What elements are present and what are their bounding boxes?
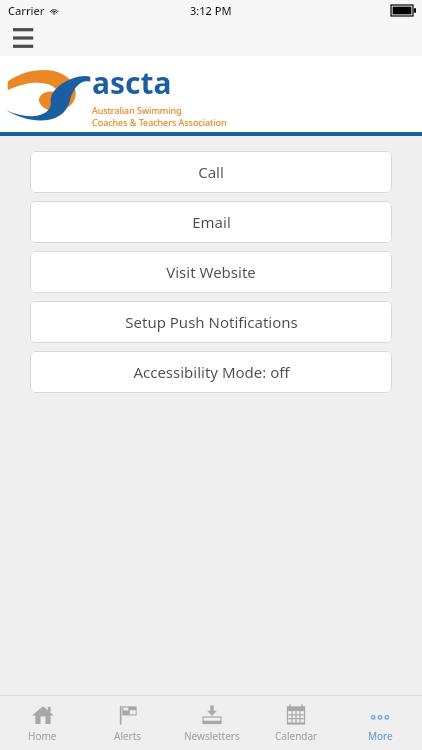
- staticText: Carrier: [8, 3, 45, 18]
- button[interactable]: Call: [30, 151, 392, 193]
- button[interactable]: Calendar: [254, 696, 338, 750]
- button[interactable]: Email: [30, 201, 392, 243]
- button[interactable]: Accessibility Mode: off: [30, 351, 392, 393]
- staticText: Accessibility Mode: off: [133, 362, 290, 382]
- staticText: Email: [192, 212, 231, 232]
- button[interactable]: Menu: [9, 23, 39, 53]
- staticText: Visit Website: [166, 262, 256, 282]
- button[interactable]: Setup Push Notifications: [30, 301, 392, 343]
- staticText: Home: [28, 729, 57, 743]
- button[interactable]: Newsletters: [170, 696, 254, 750]
- staticText: Call: [198, 162, 224, 182]
- staticText: Calendar: [275, 729, 318, 743]
- button[interactable]: More: [338, 696, 422, 750]
- button[interactable]: Alerts: [85, 696, 170, 750]
- staticText: Coaches & Teachers Association: [92, 116, 227, 128]
- button[interactable]: Home: [0, 696, 85, 750]
- staticText: More: [368, 729, 393, 743]
- staticText: Newsletters: [184, 729, 240, 743]
- staticText: Australian Swimming: [92, 104, 182, 116]
- staticText: ascta: [92, 62, 172, 103]
- staticText: Alerts: [114, 729, 142, 743]
- staticText: Setup Push Notifications: [125, 312, 298, 332]
- staticText: 3:12 PM: [190, 3, 232, 18]
- button[interactable]: Visit Website: [30, 251, 392, 293]
